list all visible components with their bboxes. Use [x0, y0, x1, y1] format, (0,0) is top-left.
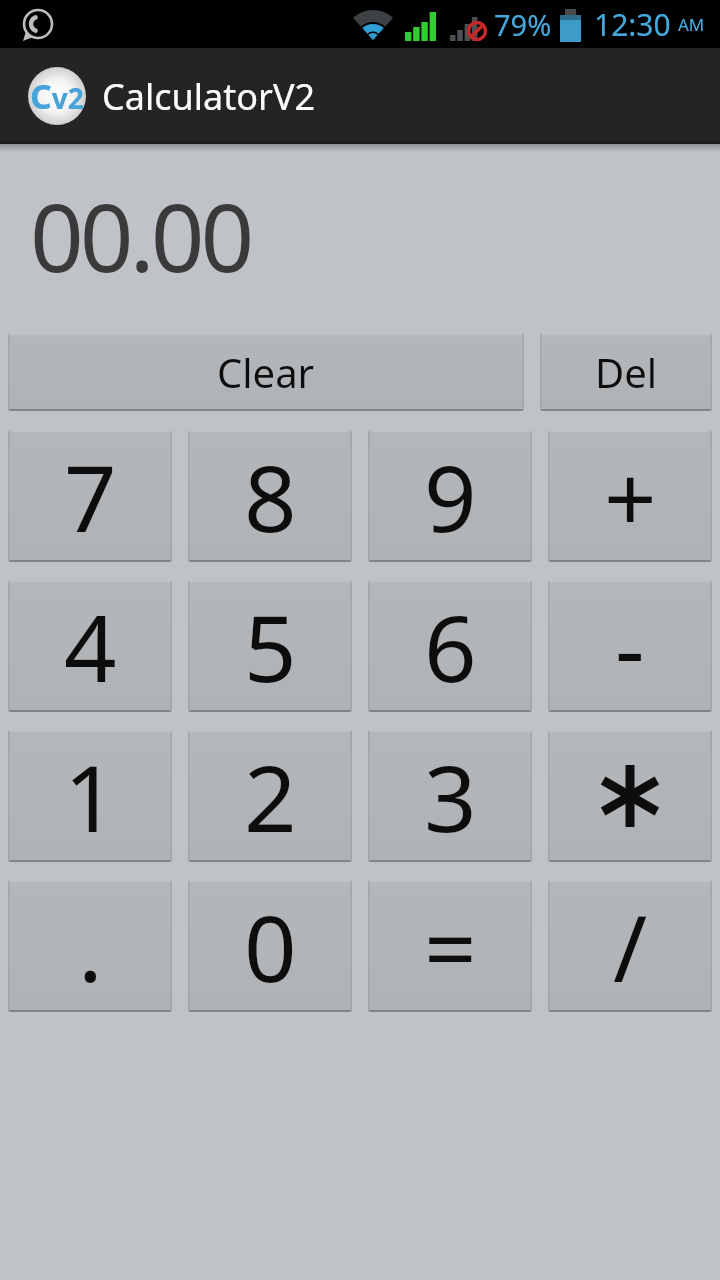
staticText: 3 — [424, 734, 477, 859]
button[interactable]: 4 — [8, 580, 172, 712]
staticText: = — [424, 884, 477, 1009]
button[interactable]: + — [548, 430, 712, 562]
button[interactable] — [548, 730, 712, 862]
button[interactable]: 6 — [368, 580, 532, 712]
button[interactable]: 0 — [188, 880, 352, 1012]
staticText: 0 — [244, 884, 297, 1009]
staticText: 12:30 — [594, 4, 671, 45]
button[interactable]: Clear — [8, 333, 524, 411]
staticText: . — [78, 884, 103, 1009]
button[interactable]: 2 — [188, 730, 352, 862]
button[interactable]: 9 — [368, 430, 532, 562]
button[interactable]: Del — [540, 333, 712, 411]
button[interactable]: 7 — [8, 430, 172, 562]
staticText: 8 — [244, 434, 297, 559]
button[interactable]: . — [8, 880, 172, 1012]
button[interactable]: 5 — [188, 580, 352, 712]
staticText: Cv2 — [30, 73, 84, 119]
staticText: AM — [678, 13, 705, 36]
staticText: 7 — [64, 434, 117, 559]
staticText: Del — [595, 345, 658, 399]
staticText: 79% — [494, 5, 552, 44]
staticText: Clear — [217, 345, 315, 399]
staticText: CalculatorV2 — [102, 72, 316, 121]
staticText: 4 — [64, 584, 117, 709]
staticText: + — [604, 434, 657, 559]
button[interactable]: - — [548, 580, 712, 712]
button[interactable]: 3 — [368, 730, 532, 862]
staticText: 5 — [244, 584, 297, 709]
staticText: 00.00 — [30, 172, 251, 300]
staticText: 6 — [424, 584, 477, 709]
staticText: 1 — [64, 734, 117, 859]
staticText: / — [613, 884, 648, 1009]
button[interactable]: 1 — [8, 730, 172, 862]
staticText: - — [615, 584, 645, 709]
button[interactable]: / — [548, 880, 712, 1012]
staticText: 9 — [424, 434, 477, 559]
button[interactable]: = — [368, 880, 532, 1012]
staticText: 2 — [244, 734, 297, 859]
button[interactable]: 8 — [188, 430, 352, 562]
